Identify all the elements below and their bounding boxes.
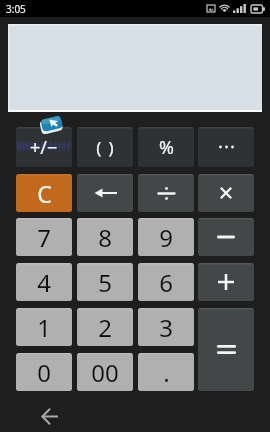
staticText: 00 bbox=[91, 356, 119, 389]
button[interactable]: 9 bbox=[138, 218, 194, 256]
button[interactable]: Toggle sign bbox=[16, 127, 72, 167]
button[interactable]: 00 bbox=[77, 353, 133, 391]
button[interactable]: 3 bbox=[138, 308, 194, 346]
button[interactable]: Backspace bbox=[77, 174, 133, 212]
button[interactable]: 4 bbox=[16, 263, 72, 301]
button[interactable]: Equals bbox=[198, 308, 254, 391]
button[interactable]: Minus bbox=[198, 218, 254, 256]
staticText: 9 bbox=[159, 221, 173, 254]
button[interactable]: . bbox=[138, 353, 194, 391]
staticText: 5 bbox=[98, 266, 112, 299]
button[interactable]: 7 bbox=[16, 218, 72, 256]
staticText: 8 bbox=[98, 221, 112, 254]
button[interactable]: % bbox=[138, 127, 194, 167]
staticText: +/− bbox=[30, 135, 58, 160]
staticText: 1 bbox=[37, 311, 51, 344]
staticText: . bbox=[163, 356, 170, 389]
staticText: 4 bbox=[37, 266, 51, 299]
staticText: % bbox=[159, 135, 174, 160]
staticText: 0 bbox=[37, 356, 51, 389]
staticText: ( ) bbox=[96, 136, 114, 159]
staticText: 6 bbox=[159, 266, 173, 299]
button[interactable]: Back bbox=[34, 403, 64, 429]
staticText: 7 bbox=[37, 221, 51, 254]
staticText: 3:05 bbox=[6, 2, 26, 16]
button[interactable]: More options bbox=[198, 127, 254, 167]
staticText: C bbox=[37, 178, 52, 209]
button[interactable]: C bbox=[16, 174, 72, 212]
staticText: 3 bbox=[159, 311, 173, 344]
button[interactable]: 5 bbox=[77, 263, 133, 301]
button[interactable]: ( ) bbox=[77, 127, 133, 167]
button[interactable]: Multiply bbox=[198, 174, 254, 212]
button[interactable]: 1 bbox=[16, 308, 72, 346]
staticText: 2 bbox=[98, 311, 112, 344]
button[interactable]: 8 bbox=[77, 218, 133, 256]
button[interactable]: 6 bbox=[138, 263, 194, 301]
button[interactable]: 0 bbox=[16, 353, 72, 391]
button[interactable]: Divide bbox=[138, 174, 194, 212]
button[interactable]: Plus bbox=[198, 263, 254, 301]
button[interactable]: 2 bbox=[77, 308, 133, 346]
